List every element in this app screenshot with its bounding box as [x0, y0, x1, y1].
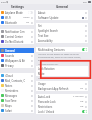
button[interactable]: Restrictions	[36, 104, 88, 109]
staticText: Home	[23, 16, 30, 19]
staticText: Off	[80, 105, 84, 108]
staticText: USE SIDE SWITCH TO:	[38, 63, 59, 66]
button[interactable]: General	[0, 48, 34, 53]
staticText: iCloud	[5, 74, 13, 78]
button[interactable]: Wi-Fi	[0, 15, 34, 20]
staticText: Auto-Lock	[38, 95, 51, 99]
staticText: Control Center	[5, 35, 23, 39]
staticText: Spotlight Search	[38, 29, 58, 33]
staticText: Use four or five fingers to swipe up to …	[38, 53, 81, 62]
staticText: Mail, Contacts, C	[5, 79, 26, 83]
button[interactable]: Toggle on	[82, 48, 87, 51]
button[interactable]: Auto-Lock	[36, 94, 88, 99]
staticText: Settings	[11, 5, 24, 9]
button[interactable]: Usage	[36, 81, 88, 86]
button[interactable]: Control Center	[0, 34, 34, 39]
staticText: General	[56, 5, 69, 9]
button[interactable]: Toggle off	[28, 11, 33, 14]
button[interactable]: Notification Cen	[0, 29, 34, 34]
staticText: Passcode Lock	[38, 100, 56, 104]
button[interactable]: Reminders	[0, 88, 34, 93]
button[interactable]: Sounds	[0, 53, 34, 58]
button[interactable]: Siri	[36, 23, 88, 28]
button[interactable]: Passcode Lock	[36, 99, 88, 104]
staticText: Accessibility	[38, 39, 53, 43]
button[interactable]: Text Size	[36, 33, 88, 38]
button[interactable]: iCloud	[0, 73, 34, 78]
staticText: Mute	[38, 72, 45, 76]
button[interactable]: FaceTime	[0, 98, 34, 103]
staticText: Siri	[38, 24, 42, 28]
staticText: Safari	[5, 109, 12, 113]
staticText: Off	[80, 100, 84, 103]
button[interactable]: About	[36, 10, 88, 15]
button[interactable]: Multitasking Gestures	[36, 47, 88, 52]
staticText: Lock / Unlock	[38, 110, 55, 114]
staticText: Usage	[38, 82, 46, 86]
staticText: About	[38, 11, 46, 15]
button[interactable]: Lock / Unlock	[36, 109, 88, 114]
staticText: Airplane Mode	[5, 11, 23, 15]
staticText: General	[5, 49, 15, 53]
button[interactable]: Maps	[0, 103, 34, 108]
staticText: 2 Minutes	[73, 95, 84, 98]
staticText: Wi-Fi	[5, 16, 11, 20]
button[interactable]: Background App Refresh	[36, 86, 88, 91]
staticText: FaceTime	[5, 99, 17, 103]
button[interactable]: Airplane Mode	[0, 10, 34, 15]
staticText: Maps	[5, 104, 12, 108]
button[interactable]: Software Update	[36, 15, 88, 20]
staticText: Reminders	[5, 89, 19, 93]
staticText: Notification Cen	[5, 30, 25, 34]
button[interactable]: Do Not Disturb	[0, 39, 34, 44]
button[interactable]: Toggle on	[82, 110, 87, 113]
button[interactable]: Messages	[0, 93, 34, 98]
staticText: Background App Refresh	[38, 87, 69, 91]
staticText: On	[26, 21, 30, 24]
staticText: Privacy	[5, 64, 14, 68]
staticText: Restrictions	[38, 105, 53, 109]
button[interactable]: Privacy	[0, 63, 34, 68]
staticText: Bluetooth	[5, 21, 18, 25]
staticText: Text Size	[38, 34, 49, 38]
staticText: On	[80, 87, 84, 90]
staticText: Notes	[5, 84, 13, 88]
staticText: Multitasking Gestures	[38, 48, 65, 52]
button[interactable]: Accessibility	[36, 38, 88, 43]
button[interactable]: Bluetooth	[0, 20, 34, 25]
button[interactable]: Mute	[36, 71, 88, 76]
staticText: Do Not Disturb	[5, 40, 24, 44]
button[interactable]: Spotlight Search	[36, 28, 88, 33]
staticText: Sounds	[5, 54, 15, 58]
button[interactable]: Lock Rotation	[36, 66, 88, 71]
button[interactable]: Notes	[0, 83, 34, 88]
staticText: Lock Rotation	[38, 67, 55, 71]
button[interactable]: Mail, Contacts, C	[0, 78, 34, 83]
staticText: Software Update	[38, 16, 59, 20]
button[interactable]: Wallpapers & Bri	[0, 58, 34, 63]
staticText: Wallpapers & Bri	[5, 59, 26, 63]
button[interactable]: Safari	[0, 108, 34, 113]
staticText: 98%	[83, 1, 87, 4]
staticText: Messages	[5, 94, 18, 98]
staticText: The side switch is set to mute.	[38, 77, 68, 80]
staticText: iPad ▼	[1, 1, 9, 4]
